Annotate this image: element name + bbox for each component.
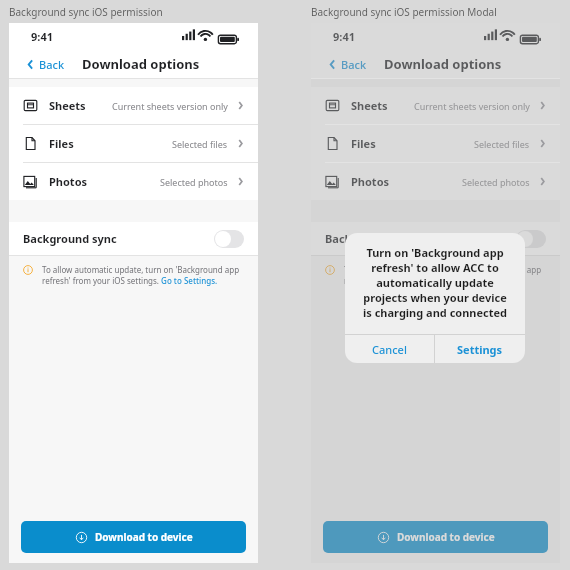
staticText: Turn on 'Background app refresh' to allo… <box>359 245 511 322</box>
staticText: Photos <box>351 174 390 189</box>
staticText: Background sync <box>23 231 117 246</box>
button[interactable]: Download to device <box>21 521 246 553</box>
button[interactable]: Photos <box>311 163 560 200</box>
button[interactable]: Photos <box>9 163 258 200</box>
button[interactable]: Download to device <box>323 521 548 553</box>
staticText: Download options <box>384 55 502 73</box>
button[interactable]: Settings <box>435 335 525 363</box>
staticText: Download options <box>82 55 200 73</box>
staticText: Current sheets version only <box>414 100 530 112</box>
button[interactable]: Sheets <box>9 87 258 125</box>
button[interactable]: Back <box>23 53 68 76</box>
staticText: To allow automatic update, turn on 'Back… <box>344 264 544 286</box>
button[interactable]: Background sync <box>311 222 560 255</box>
button[interactable]: Files <box>9 125 258 163</box>
staticText: Back <box>39 57 65 72</box>
staticText: Sheets <box>351 98 388 113</box>
staticText: Back <box>341 57 367 72</box>
staticText: Background sync iOS permission <box>9 5 163 19</box>
staticText: Settings <box>457 342 503 357</box>
button[interactable]: Sheets <box>311 87 560 125</box>
staticText: Photos <box>49 174 88 189</box>
button[interactable]: Background sync <box>9 222 258 255</box>
staticText: Download to device <box>397 530 495 544</box>
staticText: Sheets <box>49 98 86 113</box>
staticText: Selected photos <box>462 176 530 188</box>
staticText: Download to device <box>95 530 193 544</box>
staticText: Current sheets version only <box>112 100 228 112</box>
staticText: 9:41 <box>31 29 53 44</box>
staticText: Selected files <box>474 138 530 150</box>
staticText: 9:41 <box>333 29 355 44</box>
staticText: To allow automatic update, turn on 'Back… <box>42 264 242 286</box>
button[interactable]: Files <box>311 125 560 163</box>
staticText: Background sync <box>325 231 419 246</box>
staticText: Selected files <box>172 138 228 150</box>
staticText: Background sync iOS permission Modal <box>311 5 497 19</box>
staticText: Files <box>49 136 74 151</box>
button[interactable]: Cancel <box>345 335 434 363</box>
staticText: Selected photos <box>160 176 228 188</box>
staticText: Files <box>351 136 376 151</box>
button[interactable]: Back <box>325 53 370 76</box>
staticText: Cancel <box>372 342 407 357</box>
